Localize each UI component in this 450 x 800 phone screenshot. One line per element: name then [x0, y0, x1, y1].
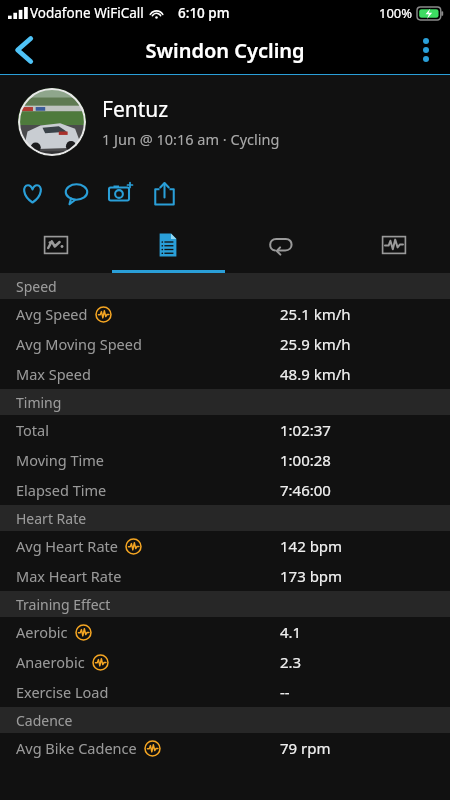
staticText: Moving Time: [16, 450, 104, 470]
button[interactable]: Map: [0, 217, 112, 273]
staticText: 25.1 km/h: [280, 304, 351, 324]
button[interactable]: Moving Time: [0, 445, 450, 475]
button[interactable]: Avg Bike Cadence: [0, 733, 450, 763]
staticText: Avg Heart Rate: [16, 536, 118, 556]
staticText: 142 bpm: [280, 536, 343, 556]
staticText: 6:10 pm: [178, 4, 230, 22]
staticText: Fentuz: [102, 95, 169, 124]
staticText: 48.9 km/h: [280, 364, 351, 384]
staticText: Cadence: [16, 711, 73, 730]
button[interactable]: Details: [112, 217, 224, 273]
staticText: --: [280, 682, 290, 702]
staticText: Timing: [16, 393, 62, 412]
staticText: 25.9 km/h: [280, 334, 351, 354]
button[interactable]: Elapsed Time: [0, 475, 450, 505]
button[interactable]: Like: [10, 171, 54, 215]
staticText: 7:46:00: [280, 480, 331, 500]
button[interactable]: More options: [402, 26, 450, 74]
staticText: 173 bpm: [280, 566, 343, 586]
staticText: 79 rpm: [280, 738, 331, 758]
button[interactable]: Laps: [224, 217, 337, 273]
button[interactable]: Comment: [54, 171, 98, 215]
staticText: Anaerobic: [16, 652, 85, 672]
staticText: Avg Moving Speed: [16, 334, 142, 354]
button[interactable]: Aerobic: [0, 617, 450, 647]
staticText: Aerobic: [16, 622, 68, 642]
button[interactable]: Avg Speed: [0, 299, 450, 329]
staticText: Max Speed: [16, 364, 91, 384]
staticText: Avg Speed: [16, 304, 88, 324]
button[interactable]: Total: [0, 415, 450, 445]
staticText: Avg Bike Cadence: [16, 738, 137, 758]
button[interactable]: Avg Moving Speed: [0, 329, 450, 359]
staticText: Total: [16, 420, 49, 440]
staticText: 1:02:37: [280, 420, 331, 440]
staticText: 1 Jun @ 10:16 am · Cycling: [102, 129, 280, 149]
staticText: Speed: [16, 277, 57, 296]
button[interactable]: Max Speed: [0, 359, 450, 389]
button[interactable]: Back: [0, 26, 48, 74]
button[interactable]: Avg Heart Rate: [0, 531, 450, 561]
staticText: 2.3: [280, 652, 302, 672]
staticText: Vodafone WiFiCall: [30, 4, 144, 22]
button[interactable]: Add photo: [98, 171, 142, 215]
button[interactable]: Charts: [337, 217, 450, 273]
button[interactable]: Exercise Load: [0, 677, 450, 707]
staticText: Training Effect: [16, 595, 111, 614]
staticText: Max Heart Rate: [16, 566, 122, 586]
staticText: 100%: [379, 4, 413, 22]
button[interactable]: Max Heart Rate: [0, 561, 450, 591]
button[interactable]: Share: [142, 171, 186, 215]
staticText: 4.1: [280, 622, 302, 642]
staticText: Exercise Load: [16, 682, 109, 702]
staticText: Swindon Cycling: [145, 37, 305, 64]
staticText: 1:00:28: [280, 450, 331, 470]
staticText: Heart Rate: [16, 509, 87, 528]
staticText: Elapsed Time: [16, 480, 107, 500]
button[interactable]: Fentuz: [0, 75, 450, 169]
button[interactable]: Anaerobic: [0, 647, 450, 677]
